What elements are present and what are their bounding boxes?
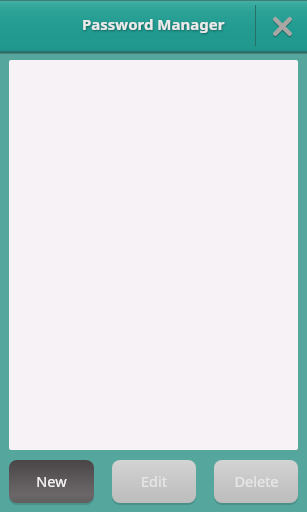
staticText: Delete <box>234 471 279 491</box>
staticText: Edit <box>141 471 167 491</box>
button[interactable]: Edit <box>112 460 196 503</box>
button[interactable]: Delete <box>214 460 298 503</box>
button[interactable]: New <box>9 460 94 503</box>
staticText: Password Manager <box>82 14 225 34</box>
staticText: New <box>36 471 67 491</box>
button[interactable]: Close <box>256 2 307 53</box>
